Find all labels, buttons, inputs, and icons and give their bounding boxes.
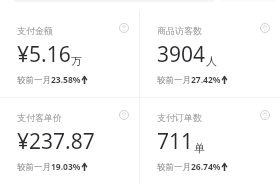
staticText: 较前一月	[157, 162, 191, 173]
staticText: 26.74%	[191, 161, 221, 173]
button[interactable]: 帮助说明	[259, 22, 271, 34]
staticText: 19.03%	[51, 161, 81, 173]
staticText: 较前一月	[157, 75, 191, 86]
staticText: 23.58%	[51, 74, 81, 86]
button[interactable]: 帮助说明	[118, 22, 130, 34]
button[interactable]: 帮助说明	[118, 109, 130, 121]
staticText: 27.42%	[191, 74, 221, 86]
staticText: 支付客单价	[17, 112, 62, 123]
button[interactable]: 帮助说明	[259, 109, 271, 121]
staticText: 较前一月	[17, 162, 51, 173]
button[interactable]: 支付客单价	[0, 98, 139, 184]
staticText: 商品访客数	[157, 25, 202, 36]
staticText: 711	[157, 127, 194, 156]
button[interactable]: 支付订单数	[140, 98, 280, 184]
staticText: 人	[206, 54, 217, 68]
staticText: 较前一月	[17, 75, 51, 86]
staticText: 支付金额	[17, 25, 53, 36]
staticText: ¥237.87	[17, 127, 95, 156]
staticText: 支付订单数	[157, 112, 202, 123]
staticText: ¥5.16	[17, 40, 71, 69]
staticText: 3904	[157, 40, 206, 69]
button[interactable]: 支付金额	[0, 11, 139, 97]
button[interactable]: 商品访客数	[140, 11, 280, 97]
staticText: 万	[71, 54, 82, 68]
staticText: 单	[194, 141, 205, 155]
